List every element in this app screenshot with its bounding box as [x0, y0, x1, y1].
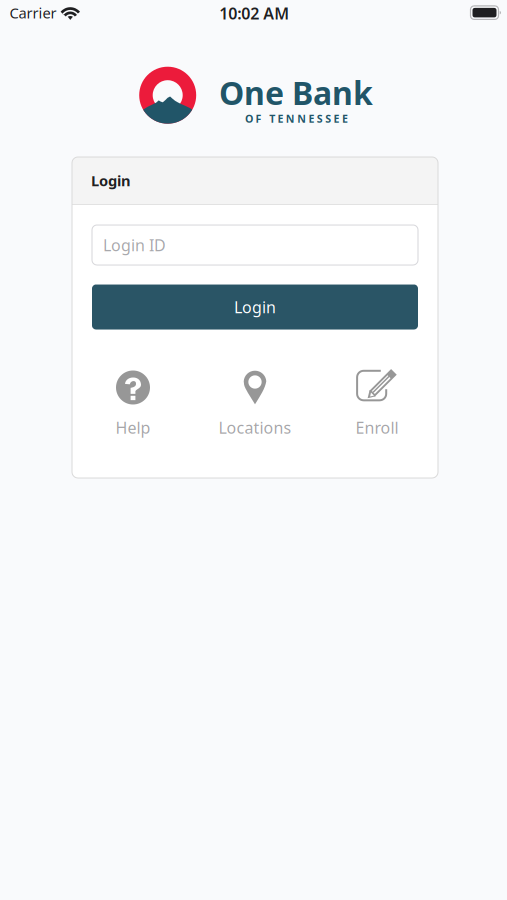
staticText: Login ID: [103, 234, 166, 256]
staticText: Locations: [218, 417, 291, 438]
staticText: Enroll: [355, 417, 398, 438]
button[interactable]: Login ID: [92, 225, 418, 265]
button[interactable]: Help: [72, 367, 194, 441]
staticText: One Bank: [219, 71, 373, 114]
staticText: Help: [115, 417, 150, 438]
button[interactable]: Locations: [194, 367, 316, 441]
staticText: Login: [234, 296, 276, 318]
button[interactable]: Login: [92, 284, 418, 329]
staticText: Login: [91, 171, 131, 190]
staticText: OF TENNESSEE: [245, 111, 348, 126]
staticText: Carrier: [9, 3, 56, 23]
staticText: 10:02 AM: [219, 3, 289, 24]
button[interactable]: Enroll: [316, 367, 438, 441]
